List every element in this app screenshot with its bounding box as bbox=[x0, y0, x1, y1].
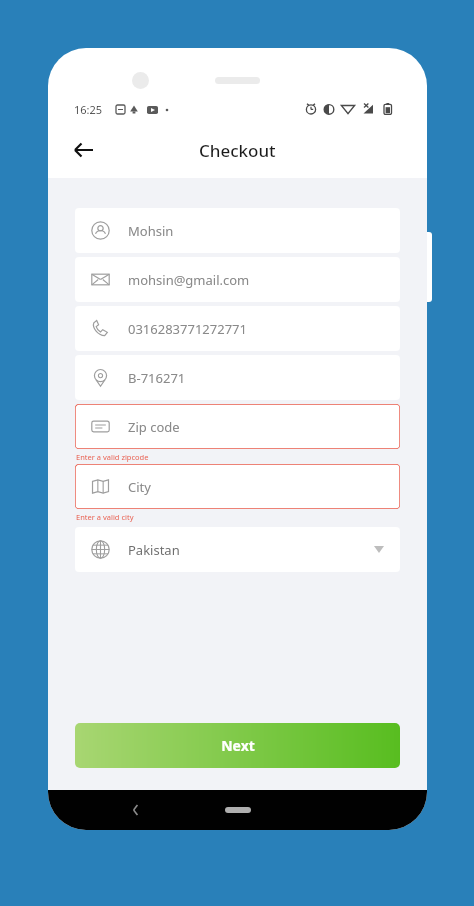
staticText: 16:25 bbox=[74, 102, 103, 117]
staticText: City bbox=[128, 478, 151, 496]
button[interactable]: Back bbox=[62, 128, 106, 172]
button[interactable]: Next bbox=[75, 723, 400, 768]
button[interactable]: Home bbox=[225, 807, 251, 813]
button[interactable]: Pakistan bbox=[75, 527, 400, 572]
staticText: Zip code bbox=[128, 418, 180, 436]
staticText: B-716271 bbox=[128, 369, 186, 387]
staticText: Enter a valid city bbox=[76, 512, 134, 522]
staticText: Enter a valid zipcode bbox=[76, 452, 149, 462]
button[interactable]: mohsin@gmail.com bbox=[75, 257, 400, 302]
staticText: mohsin@gmail.com bbox=[128, 271, 250, 289]
button[interactable]: 0316283771272771 bbox=[75, 306, 400, 351]
staticText: Checkout bbox=[199, 139, 276, 162]
button[interactable]: City bbox=[75, 464, 400, 509]
staticText: Pakistan bbox=[128, 541, 180, 559]
button[interactable]: B-716271 bbox=[75, 355, 400, 400]
staticText: Next bbox=[221, 736, 255, 755]
staticText: 0316283771272771 bbox=[128, 320, 247, 338]
button[interactable]: Mohsin bbox=[75, 208, 400, 253]
button[interactable]: Back bbox=[120, 794, 152, 826]
staticText: Mohsin bbox=[128, 222, 174, 240]
button[interactable]: Zip code bbox=[75, 404, 400, 449]
